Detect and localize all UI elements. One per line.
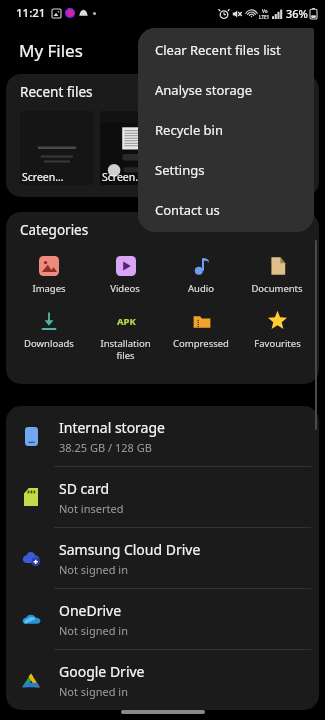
staticText: SD card (59, 479, 110, 498)
button[interactable]: Downloads (10, 308, 87, 351)
button[interactable]: Screen…er (100, 111, 174, 185)
button[interactable]: Samsung Cloud Drive (6, 528, 319, 588)
staticText: Recent files (20, 83, 93, 101)
staticText: Categories (20, 221, 89, 239)
button[interactable]: OneDrive (6, 589, 319, 649)
staticText: Not signed in (59, 684, 128, 699)
button[interactable]: Internal storage (6, 406, 319, 466)
staticText: Not inserted (59, 501, 124, 516)
staticText: Installation files (100, 337, 151, 362)
staticText: 36% (286, 6, 308, 21)
button[interactable]: Videos (87, 253, 163, 296)
staticText: Samsung Cloud Drive (59, 540, 201, 559)
staticText: Clear Recent files list (155, 41, 281, 59)
staticText: Recycle bin (155, 121, 223, 139)
button[interactable]: Audio (163, 253, 239, 296)
button[interactable]: APK (87, 308, 163, 363)
staticText: Google Drive (59, 662, 145, 681)
staticText: OneDrive (59, 601, 122, 620)
staticText: Screen…les.jpg (22, 170, 94, 184)
staticText: My Files (19, 39, 83, 62)
staticText: Not signed in (59, 623, 128, 638)
staticText: LTE1 (259, 14, 270, 20)
staticText: Internal storage (59, 418, 165, 437)
button[interactable]: Clear Recent files list (138, 30, 314, 70)
button[interactable]: Images (10, 253, 87, 296)
button[interactable]: Contact us (138, 190, 314, 230)
staticText: Contact us (155, 201, 220, 219)
staticText: Downloads (24, 337, 74, 350)
button[interactable]: Recycle bin (138, 110, 314, 150)
staticText: Videos (110, 282, 140, 295)
staticText: Screen… (182, 170, 224, 184)
staticText: Documents (251, 282, 303, 295)
staticText: Images (32, 282, 66, 295)
staticText: 11:21 (16, 5, 46, 21)
button[interactable]: Analyse storage (138, 70, 314, 110)
staticText: 38.25 GB / 128 GB (59, 440, 152, 455)
staticText: Vo (262, 8, 268, 14)
button[interactable]: Recent files (6, 74, 319, 197)
staticText: Settings (155, 161, 205, 179)
button[interactable]: Favourites (239, 308, 315, 351)
staticText: Audio (188, 282, 214, 295)
staticText: Analyse storage (155, 81, 253, 99)
button[interactable]: Google Drive (6, 650, 319, 710)
button[interactable]: Compressed (163, 308, 239, 351)
button[interactable]: Settings (138, 150, 314, 190)
staticText: Screen…er (102, 170, 154, 184)
staticText: APK (117, 315, 136, 328)
staticText: Compressed (173, 337, 229, 350)
button[interactable]: Documents (239, 253, 315, 296)
button[interactable]: Screen…les.jpg (20, 111, 94, 185)
staticText: Not signed in (59, 562, 128, 577)
button[interactable]: SD card (6, 467, 319, 527)
staticText: Favourites (254, 337, 301, 350)
button[interactable]: Screen… (180, 111, 254, 185)
